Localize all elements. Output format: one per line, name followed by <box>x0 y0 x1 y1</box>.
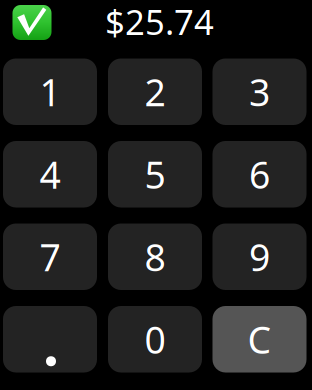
staticText: C <box>247 314 271 364</box>
button[interactable]: 9 <box>212 223 306 290</box>
staticText: 0 <box>144 314 165 364</box>
button[interactable]: 7 <box>3 223 97 290</box>
button[interactable]: 3 <box>212 58 306 125</box>
button[interactable]: 5 <box>108 141 202 207</box>
staticText: 1 <box>39 67 60 117</box>
staticText: 4 <box>39 149 60 199</box>
staticText: 6 <box>249 149 270 199</box>
staticText: 5 <box>144 149 165 199</box>
staticText: 9 <box>249 232 270 282</box>
button[interactable]: 2 <box>108 58 202 125</box>
staticText: 7 <box>39 232 60 282</box>
button[interactable]: 8 <box>108 223 202 290</box>
button[interactable]: Confirm <box>12 5 51 40</box>
staticText: 3 <box>249 67 270 117</box>
button[interactable]: C <box>212 306 306 372</box>
staticText: 8 <box>144 232 165 282</box>
button[interactable]: Decimal point <box>3 306 97 372</box>
button[interactable]: 6 <box>212 141 306 207</box>
button[interactable]: 0 <box>108 306 202 372</box>
button[interactable]: 1 <box>3 58 97 125</box>
staticText: $25.74 <box>105 0 214 44</box>
staticText: 2 <box>144 67 165 117</box>
button[interactable]: 4 <box>3 141 97 207</box>
